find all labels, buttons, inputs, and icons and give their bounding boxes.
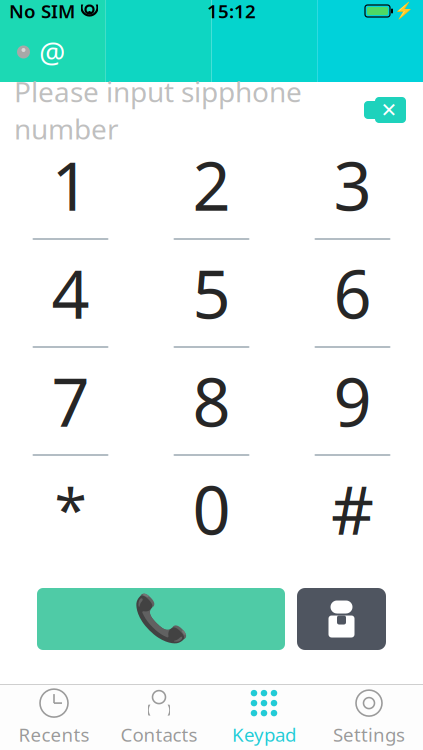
staticText: ✕ [380, 99, 397, 121]
button[interactable]: Settings [316, 685, 421, 750]
button[interactable]: Call [37, 588, 285, 650]
staticText: 3 [333, 141, 371, 229]
button[interactable]: 4 [0, 250, 141, 336]
staticText: 4 [51, 249, 89, 337]
button[interactable]: 2 [141, 142, 282, 228]
staticText: 8 [192, 357, 230, 445]
staticText: Please input sipphone number [14, 73, 302, 147]
staticText: Contacts [120, 722, 197, 747]
staticText: 5 [192, 249, 230, 337]
button[interactable]: 9 [282, 358, 423, 444]
staticText: @ [39, 32, 65, 71]
staticText: 15:12 [207, 0, 256, 23]
staticText: Recents [18, 722, 89, 747]
staticText: 1 [51, 141, 89, 229]
button[interactable]: 0 [141, 466, 282, 552]
staticText: No SIM [9, 0, 75, 23]
staticText: * [54, 470, 86, 548]
staticText: Keypad [232, 722, 296, 747]
button[interactable]: 1 [0, 142, 141, 228]
button[interactable]: Recents [1, 685, 106, 750]
staticText: 9 [333, 357, 371, 445]
button[interactable]: Add contact [297, 588, 386, 650]
staticText: 0 [192, 465, 230, 553]
button[interactable]: Keypad [211, 685, 316, 750]
button[interactable]: Account [11, 28, 71, 75]
button[interactable]: Delete [362, 95, 408, 125]
button[interactable]: 7 [0, 358, 141, 444]
button[interactable]: 3 [282, 142, 423, 228]
button[interactable]: 5 [141, 250, 282, 336]
button[interactable]: Contacts [106, 685, 211, 750]
staticText: 7 [51, 357, 89, 445]
staticText: # [331, 465, 374, 553]
staticText: 2 [192, 141, 230, 229]
staticText: ⚡ [394, 2, 414, 20]
button[interactable]: 6 [282, 250, 423, 336]
staticText: Settings [333, 722, 405, 747]
staticText: 📞 [133, 593, 189, 645]
button[interactable]: 8 [141, 358, 282, 444]
staticText: 6 [333, 249, 371, 337]
button[interactable]: * [0, 466, 141, 552]
button[interactable]: # [282, 466, 423, 552]
